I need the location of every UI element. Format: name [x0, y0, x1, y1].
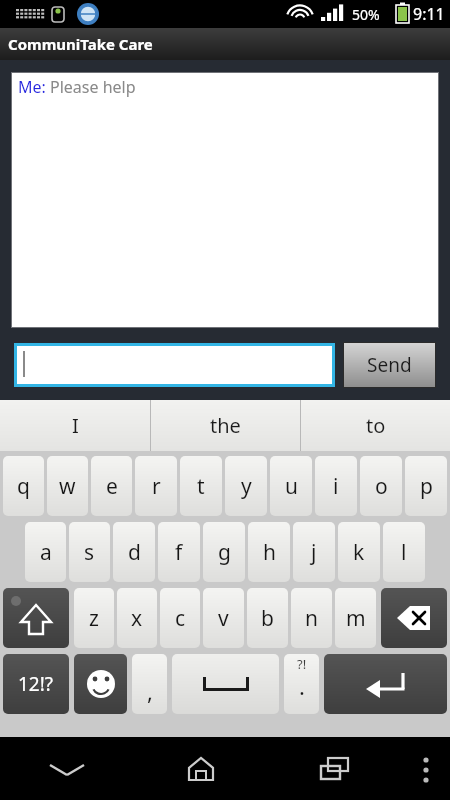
button[interactable]: the — [151, 400, 300, 451]
button[interactable]: c — [160, 588, 200, 648]
staticText: n — [305, 604, 318, 633]
button[interactable]: y — [225, 456, 267, 516]
staticText: the — [210, 412, 241, 439]
staticText: m — [346, 604, 366, 633]
staticText: 9:11 — [413, 3, 445, 25]
staticText: Me: Please help — [18, 76, 136, 98]
staticText: ?! — [297, 655, 307, 673]
staticText: p — [420, 472, 433, 501]
staticText: Send — [367, 352, 412, 378]
button[interactable]: t — [180, 456, 222, 516]
button[interactable]: o — [360, 456, 402, 516]
staticText: w — [59, 472, 76, 501]
button[interactable]: w — [47, 456, 88, 516]
button[interactable]: r — [135, 456, 177, 516]
staticText: 50% — [352, 5, 380, 24]
button[interactable]: s — [69, 522, 110, 582]
button[interactable]: Symbols — [3, 654, 69, 714]
button[interactable]: Enter — [324, 654, 447, 714]
button[interactable]: g — [203, 522, 245, 582]
button[interactable]: j — [293, 522, 335, 582]
staticText: x — [131, 604, 143, 633]
button[interactable]: Home — [134, 737, 268, 800]
staticText: q — [17, 472, 30, 501]
button[interactable]: f — [158, 522, 200, 582]
button[interactable]: p — [405, 456, 447, 516]
staticText: . — [299, 671, 305, 701]
button[interactable]: Shift — [3, 588, 69, 648]
button[interactable]: to — [301, 400, 450, 451]
button[interactable]: e — [91, 456, 132, 516]
button[interactable]: n — [291, 588, 332, 648]
button[interactable]: More options — [402, 737, 450, 800]
button[interactable]: Space — [172, 654, 279, 714]
button[interactable]: I — [0, 400, 150, 451]
staticText: j — [311, 538, 317, 567]
button[interactable]: x — [117, 588, 157, 648]
button[interactable] — [17, 346, 332, 384]
button[interactable]: Send — [344, 343, 435, 387]
button[interactable]: u — [270, 456, 312, 516]
staticText: t — [197, 472, 205, 501]
staticText: e — [106, 472, 118, 501]
staticText: d — [128, 538, 141, 567]
staticText: c — [175, 604, 186, 633]
staticText: g — [218, 538, 231, 567]
staticText: I — [72, 412, 79, 439]
staticText: , — [147, 676, 153, 706]
staticText: to — [366, 412, 386, 439]
staticText: o — [375, 472, 388, 501]
staticText: k — [353, 538, 365, 567]
button[interactable]: a — [25, 522, 66, 582]
staticText: i — [333, 472, 339, 501]
button[interactable]: l — [383, 522, 425, 582]
staticText: 12!? — [18, 671, 54, 697]
staticText: v — [218, 604, 229, 633]
staticText: s — [84, 538, 95, 567]
button[interactable]: Emoji — [74, 654, 127, 714]
button[interactable]: b — [247, 588, 288, 648]
staticText: h — [263, 538, 276, 567]
staticText: a — [40, 538, 52, 567]
button[interactable]: d — [113, 522, 155, 582]
button[interactable]: m — [335, 588, 376, 648]
button[interactable]: Backspace — [381, 588, 447, 648]
staticText: f — [175, 538, 183, 567]
button[interactable]: v — [203, 588, 244, 648]
button[interactable]: h — [248, 522, 290, 582]
staticText: r — [152, 472, 161, 501]
button[interactable]: Recents — [268, 737, 402, 800]
staticText: y — [241, 472, 252, 501]
button[interactable]: Me: Please help — [12, 73, 438, 327]
staticText: z — [89, 604, 99, 633]
button[interactable]: ?! — [284, 654, 319, 714]
button[interactable]: q — [3, 456, 44, 516]
staticText: b — [261, 604, 274, 633]
button[interactable]: CommuniTake Care — [0, 28, 450, 60]
staticText: u — [285, 472, 298, 501]
button[interactable]: Hide keyboard — [0, 737, 134, 800]
button[interactable]: k — [338, 522, 380, 582]
button[interactable]: , — [132, 654, 167, 714]
button[interactable]: z — [74, 588, 114, 648]
button[interactable]: i — [315, 456, 357, 516]
staticText: l — [401, 538, 407, 567]
staticText: CommuniTake Care — [8, 34, 153, 54]
